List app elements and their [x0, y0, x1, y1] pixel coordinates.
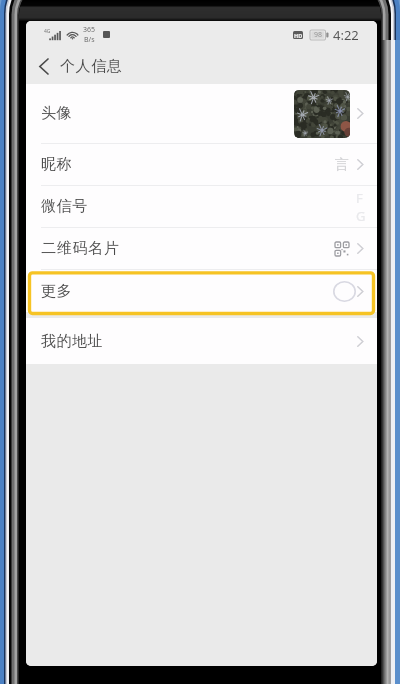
staticText: 我的地址: [41, 332, 104, 351]
staticText: G: [356, 207, 366, 225]
staticText: HD: [294, 32, 303, 39]
staticText: 365: [83, 25, 96, 35]
button[interactable]: 头像: [26, 84, 377, 143]
staticText: B/s: [84, 35, 95, 45]
staticText: 二维码名片: [41, 239, 119, 258]
button[interactable]: 微信号: [26, 186, 377, 227]
staticText: 昵称: [41, 155, 73, 174]
staticText: 4:22: [333, 26, 359, 44]
button[interactable]: Back: [26, 48, 60, 84]
button[interactable]: 昵称: [26, 144, 377, 185]
staticText: 更多: [41, 282, 73, 301]
staticText: F: [356, 189, 363, 207]
staticText: 4G: [44, 28, 51, 35]
staticText: 98: [314, 30, 323, 40]
button[interactable]: 我的地址: [26, 318, 377, 364]
button[interactable]: 二维码名片: [26, 228, 377, 269]
staticText: 微信号: [41, 197, 88, 216]
button[interactable]: 更多: [26, 270, 377, 312]
staticText: 言: [335, 156, 349, 174]
staticText: 头像: [41, 104, 73, 123]
staticText: 个人信息: [60, 57, 123, 76]
